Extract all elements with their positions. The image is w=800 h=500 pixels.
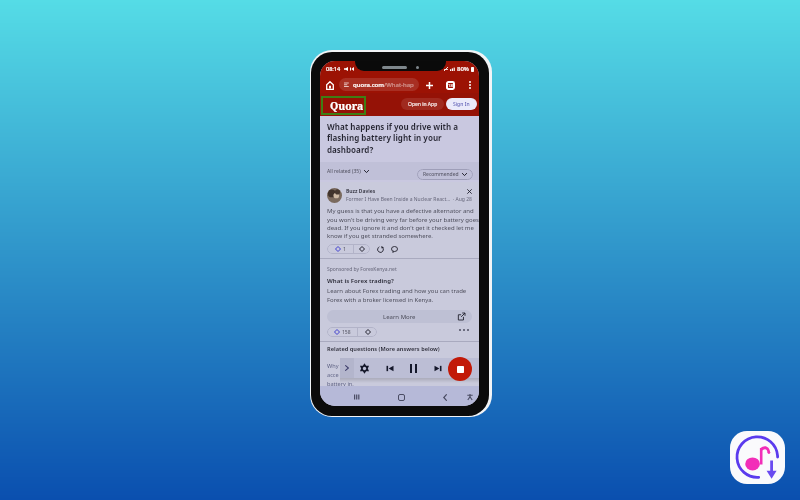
button[interactable]: All related (35) bbox=[327, 168, 369, 175]
staticText: Sponsored by ForexKenya.net bbox=[327, 266, 397, 273]
button[interactable]: Music Downloader bbox=[730, 431, 785, 484]
button[interactable]: Upvote bbox=[327, 327, 357, 337]
staticText: 08:14 bbox=[326, 65, 341, 72]
button[interactable]: Settings bbox=[358, 362, 371, 375]
button[interactable]: Pause bbox=[407, 362, 420, 375]
button[interactable]: Learn More bbox=[327, 310, 472, 323]
button[interactable]: More options bbox=[464, 79, 476, 91]
staticText: All related (35) bbox=[327, 168, 361, 175]
button[interactable]: Recommended bbox=[417, 169, 473, 180]
button[interactable]: Comment bbox=[388, 243, 400, 255]
button[interactable]: Open in App bbox=[401, 98, 444, 110]
button[interactable]: Stop recording bbox=[448, 357, 472, 381]
staticText: Why acce battery in. bbox=[327, 362, 354, 387]
button[interactable]: Home bbox=[393, 389, 409, 405]
button[interactable]: Collapse bbox=[340, 358, 354, 378]
button[interactable]: Downvote bbox=[354, 244, 370, 254]
button[interactable]: Accessibility bbox=[462, 389, 478, 405]
button[interactable]: Next bbox=[431, 362, 444, 375]
button[interactable]: Back bbox=[437, 389, 453, 405]
button[interactable]: Downvote bbox=[358, 327, 377, 337]
button[interactable]: Home bbox=[324, 79, 336, 91]
button[interactable]: Dismiss bbox=[463, 185, 475, 197]
button[interactable]: Share bbox=[374, 243, 386, 255]
staticText: What happens if you drive with a flashin… bbox=[327, 121, 459, 156]
staticText: 18 bbox=[448, 83, 453, 89]
staticText: quora.com bbox=[353, 81, 384, 89]
button[interactable]: quora.com bbox=[339, 78, 419, 91]
button[interactable]: Tabs bbox=[444, 79, 456, 91]
button[interactable]: Sign In bbox=[446, 98, 477, 110]
staticText: 158 bbox=[342, 329, 351, 336]
button[interactable]: Previous bbox=[383, 362, 396, 375]
staticText: /What-hap bbox=[384, 81, 414, 89]
staticText: What is Forex trading? bbox=[327, 277, 394, 285]
button[interactable]: New tab bbox=[423, 79, 435, 91]
staticText: 80% bbox=[457, 65, 469, 73]
button[interactable]: Recents bbox=[348, 389, 364, 405]
staticText: Buzz Davies bbox=[346, 188, 376, 195]
staticText: Related questions (More answers below) bbox=[327, 345, 440, 353]
staticText: 1 bbox=[343, 246, 346, 253]
staticText: Sign In bbox=[453, 101, 470, 108]
staticText: Open in App bbox=[408, 101, 438, 108]
staticText: My guess is that you have a defective al… bbox=[327, 207, 479, 239]
button[interactable]: More bbox=[456, 325, 472, 335]
staticText: Former I Have Been Inside a Nuclear Reac… bbox=[346, 196, 472, 203]
button[interactable]: Upvote bbox=[327, 244, 353, 254]
staticText: Learn More bbox=[383, 313, 416, 321]
staticText: Quora bbox=[330, 99, 364, 113]
staticText: Recommended bbox=[423, 171, 459, 178]
staticText: Learn about Forex trading and how you ca… bbox=[327, 287, 469, 303]
